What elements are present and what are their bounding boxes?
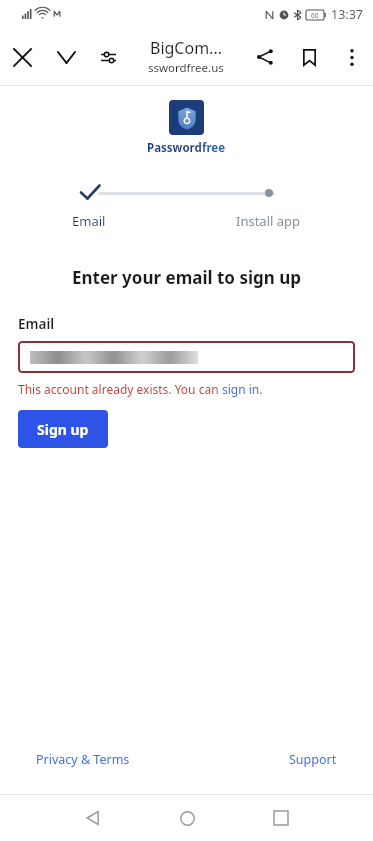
button[interactable]: Bookmark — [287, 35, 331, 79]
button[interactable]: Collapse — [44, 35, 88, 79]
staticText: sswordfree.us — [148, 60, 224, 76]
button[interactable]: Sign up — [18, 410, 108, 448]
button[interactable]: Close — [0, 35, 44, 79]
button[interactable]: Site settings — [88, 37, 128, 77]
button[interactable]: sign in. — [222, 381, 263, 397]
button[interactable]: Support — [289, 751, 337, 768]
button[interactable]: Share — [243, 35, 287, 79]
button[interactable]: Home — [140, 795, 234, 841]
staticText: This account already exists. You can — [18, 381, 222, 397]
button[interactable]: Recent apps — [234, 795, 328, 841]
staticText: Email — [72, 212, 106, 230]
button[interactable]: Back — [46, 795, 140, 841]
staticText: BigCom... — [150, 37, 222, 59]
staticText: Email — [18, 315, 55, 333]
staticText: 13:37 — [331, 6, 363, 23]
staticText: Password — [147, 140, 202, 156]
staticText: free — [202, 140, 226, 156]
staticText: Sign up — [37, 420, 89, 439]
button[interactable]: Privacy & Terms — [36, 751, 130, 768]
staticText: 60 — [311, 11, 319, 20]
button[interactable] — [18, 341, 355, 373]
staticText: Enter your email to sign up — [0, 266, 373, 289]
staticText: Install app — [236, 212, 301, 230]
button[interactable]: BigCom... — [128, 37, 243, 76]
button[interactable]: More options — [331, 36, 373, 78]
